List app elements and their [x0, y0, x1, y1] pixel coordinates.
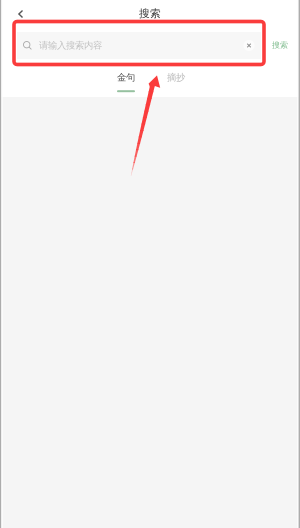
button[interactable]: 金句 [106, 70, 146, 94]
staticText: 摘抄 [167, 72, 185, 83]
staticText: 搜索 [272, 40, 288, 50]
button[interactable]: 搜索 [265, 32, 295, 58]
staticText: 请输入搜索内容 [39, 40, 102, 51]
staticText: 搜索 [139, 7, 161, 20]
staticText: 金句 [117, 72, 135, 83]
button[interactable]: Clear text [239, 32, 259, 59]
button[interactable]: Back [9, 0, 33, 28]
button[interactable]: 请输入搜索内容 [17, 32, 261, 59]
button[interactable]: 摘抄 [156, 70, 196, 94]
